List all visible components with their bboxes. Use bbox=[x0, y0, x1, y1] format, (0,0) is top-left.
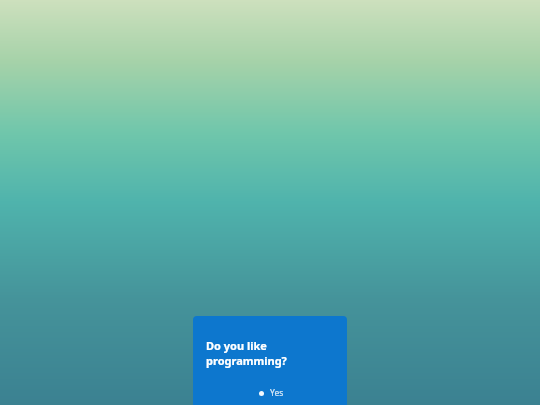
staticText: Yes bbox=[270, 387, 284, 399]
button[interactable]: Yes bbox=[193, 381, 347, 405]
staticText: Do you like programming? bbox=[206, 338, 337, 368]
